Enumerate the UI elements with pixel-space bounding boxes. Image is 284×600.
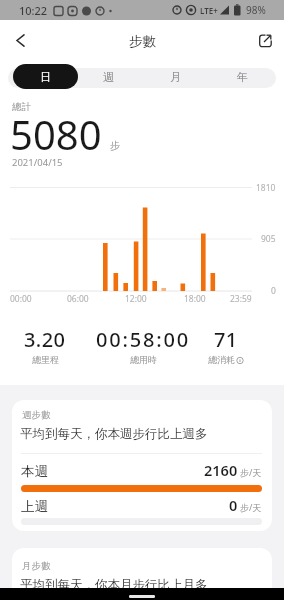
button[interactable]: 週 xyxy=(82,66,134,88)
button[interactable] xyxy=(129,595,155,598)
staticText: 5080 xyxy=(10,107,102,161)
staticText: 週 xyxy=(103,70,114,84)
staticText: LTE+ xyxy=(200,5,218,16)
staticText: 本週 xyxy=(21,463,48,480)
staticText: 00:58:00 xyxy=(96,326,190,353)
staticText: 0 xyxy=(271,285,276,297)
button[interactable]: 月 xyxy=(149,66,201,88)
staticText: 週步數 xyxy=(22,409,51,421)
button[interactable]: 71 xyxy=(186,326,266,365)
staticText: 23:59 xyxy=(230,293,252,305)
staticText: 10:22 xyxy=(19,3,48,18)
button[interactable]: 月步數 xyxy=(12,548,272,600)
staticText: 00:00 xyxy=(10,293,32,305)
staticText: 12:00 xyxy=(125,293,147,305)
staticText: 18:00 xyxy=(184,293,206,305)
staticText: 步/天 xyxy=(240,466,262,478)
staticText: 1810 xyxy=(256,182,276,194)
button[interactable] xyxy=(6,28,34,52)
button[interactable]: 日 xyxy=(13,64,78,89)
button[interactable]: 週步數 xyxy=(12,400,272,531)
staticText: 平均到每天，你本月步行比上月多 xyxy=(20,577,208,593)
button[interactable] xyxy=(252,28,278,52)
staticText: 71 xyxy=(214,326,238,353)
button[interactable]: 3.20 xyxy=(5,326,85,365)
staticText: 2160 xyxy=(204,460,238,480)
staticText: 總消耗 xyxy=(208,354,235,365)
staticText: 2021/04/15 xyxy=(12,156,63,169)
staticText: 總用時 xyxy=(130,354,157,365)
staticText: 步數 xyxy=(129,33,156,50)
staticText: 日 xyxy=(40,70,51,84)
staticText: 月 xyxy=(170,70,181,84)
staticText: 上週 xyxy=(21,498,48,515)
staticText: 總計 xyxy=(12,101,31,113)
staticText: 總里程 xyxy=(32,354,59,365)
staticText: 0 xyxy=(229,495,238,515)
button[interactable]: 年 xyxy=(216,66,268,88)
button[interactable]: 00:58:00 xyxy=(95,326,191,365)
staticText: 905 xyxy=(261,233,276,245)
staticText: 06:00 xyxy=(67,293,89,305)
staticText: 月步數 xyxy=(22,560,51,572)
staticText: 步/天 xyxy=(240,501,262,513)
staticText: 平均到每天，你本週步行比上週多 xyxy=(20,426,208,442)
staticText: 年 xyxy=(237,70,248,84)
staticText: 步 xyxy=(110,139,120,152)
staticText: 98% xyxy=(246,3,266,17)
staticText: 3.20 xyxy=(24,326,66,353)
